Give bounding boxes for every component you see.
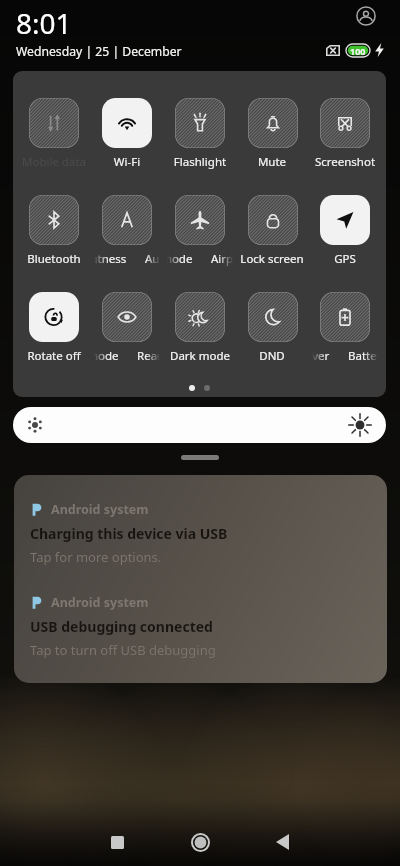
staticText: Flashlight	[167, 154, 233, 170]
staticText: Battery saver	[348, 348, 378, 364]
button[interactable]: Brightness	[13, 407, 386, 443]
staticText: 8:01	[16, 4, 72, 42]
button[interactable]: Auto brightness	[102, 195, 152, 245]
staticText: 100	[350, 45, 366, 57]
button[interactable]: Flashlight	[175, 98, 225, 148]
button[interactable]: Recents	[93, 818, 141, 866]
staticText: Charging this device via USB	[30, 524, 228, 543]
button[interactable]: Lock screen	[248, 195, 298, 245]
staticText: Mobile data	[21, 154, 87, 170]
staticText: Wi-Fi	[94, 154, 160, 170]
staticText: Reading mode	[94, 348, 119, 364]
button[interactable]: Airplane mode	[175, 195, 225, 245]
button[interactable]: Rotate off	[29, 292, 79, 342]
button[interactable]: Home	[176, 818, 224, 866]
staticText: Airplane mode	[167, 251, 193, 267]
staticText: Mute	[239, 154, 305, 170]
staticText: Auto brightness	[94, 251, 127, 267]
staticText: Airplane mode	[211, 251, 233, 267]
staticText: Tap for more options.	[30, 548, 162, 566]
staticText: Tap to turn off USB debugging	[30, 641, 216, 659]
button[interactable]: Android system	[14, 568, 387, 659]
staticText: Dark mode	[167, 348, 233, 364]
button[interactable]: User profile	[354, 4, 378, 28]
button[interactable]: Screenshot	[320, 98, 370, 148]
staticText: Android system	[51, 501, 149, 518]
staticText: Reading mode	[137, 348, 160, 364]
button[interactable]: GPS	[320, 195, 370, 245]
staticText: Bluetooth	[21, 251, 87, 267]
button[interactable]: DND	[248, 292, 298, 342]
button[interactable]: Wi-Fi	[102, 98, 152, 148]
button[interactable]: Android system	[14, 475, 387, 566]
staticText: Wednesday | 25 | December	[16, 43, 182, 60]
button[interactable]: Mute	[248, 98, 298, 148]
button[interactable]: Reading mode	[102, 292, 152, 342]
staticText: Rotate off	[21, 348, 87, 364]
staticText: Android system	[51, 594, 149, 611]
staticText: USB debugging connected	[30, 617, 213, 636]
button[interactable]: Battery saver	[320, 292, 370, 342]
staticText: Screenshot	[312, 154, 378, 170]
button[interactable]: Dark mode	[175, 292, 225, 342]
staticText: GPS	[312, 251, 378, 267]
staticText: Battery saver	[312, 348, 330, 364]
staticText: Lock screen	[239, 251, 305, 267]
staticText: Auto brightness	[145, 251, 160, 267]
button[interactable]: Bluetooth	[29, 195, 79, 245]
button[interactable]: Back	[258, 818, 306, 866]
button[interactable]: Mobile data	[29, 98, 79, 148]
staticText: DND	[239, 348, 305, 364]
